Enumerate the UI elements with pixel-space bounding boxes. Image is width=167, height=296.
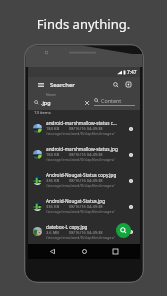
staticText: 184 KB — [46, 152, 59, 157]
staticText: Searcher — [50, 81, 75, 89]
button[interactable]: Search — [116, 223, 131, 238]
button[interactable]: Android-Nougat-Status copy.jpg — [28, 167, 140, 193]
staticText: Name — [46, 92, 57, 97]
staticText: 08/16/16 04:49:38 — [69, 230, 103, 235]
staticText: android-marshmallow-status.jpg — [46, 146, 118, 152]
button[interactable]: android-marshmallow-status.jpg — [28, 141, 140, 167]
staticText: 336 KB — [46, 204, 59, 209]
button[interactable]: Android-Nougat-Status.jpg — [28, 193, 140, 219]
staticText: 184 KB — [46, 126, 59, 131]
staticText: /storage/emulated/0/clapfiles/images/ — [46, 157, 115, 162]
staticText: Content — [101, 97, 122, 104]
button[interactable]: android-marshmallow-status c... — [28, 115, 140, 141]
staticText: 08/16/16 04:49:38 — [69, 126, 103, 131]
staticText: /storage/emulated/0/clapfiles/images/ — [46, 183, 115, 188]
button[interactable]: Home — [78, 245, 91, 258]
staticText: 08/16/16 04:49:38 — [69, 152, 103, 157]
button[interactable]: More options — [126, 227, 135, 236]
button[interactable]: More options — [126, 124, 135, 133]
staticText: /storage/emulated/0/clapfiles/images/ — [46, 235, 115, 240]
staticText: 7:47 — [127, 69, 137, 76]
staticText: /storage/emulated/0/clapfiles/images/ — [46, 131, 115, 136]
staticText: datebox-L copy.jpg — [46, 224, 88, 230]
staticText: Android-Nougat-Status.jpg — [46, 198, 106, 204]
button[interactable]: Open navigation menu — [36, 80, 45, 89]
staticText: android-marshmallow-status c... — [46, 120, 117, 126]
staticText: /storage/emulated/0/clapfiles/images/ — [46, 209, 115, 214]
staticText: 336 KB — [46, 178, 59, 183]
staticText: 13 items — [34, 110, 51, 115]
button[interactable]: More options — [126, 176, 135, 185]
button[interactable]: Select mode — [123, 79, 134, 90]
staticText: 3.6 MB — [46, 230, 59, 235]
staticText: Android-Nougat-Status copy.jpg — [46, 172, 117, 178]
button[interactable]: Search — [110, 79, 121, 90]
button[interactable]: datebox-L copy.jpg — [28, 219, 140, 244]
button[interactable]: Recent apps — [109, 245, 122, 258]
staticText: Finds anything. — [0, 15, 167, 33]
staticText: 08/16/16 04:49:38 — [69, 178, 103, 183]
button[interactable]: Back — [46, 245, 59, 258]
button[interactable]: More options — [126, 150, 135, 159]
staticText: .jpg — [41, 99, 51, 106]
staticText: 08/16/16 04:49:38 — [69, 204, 103, 209]
button[interactable]: More options — [126, 202, 135, 211]
